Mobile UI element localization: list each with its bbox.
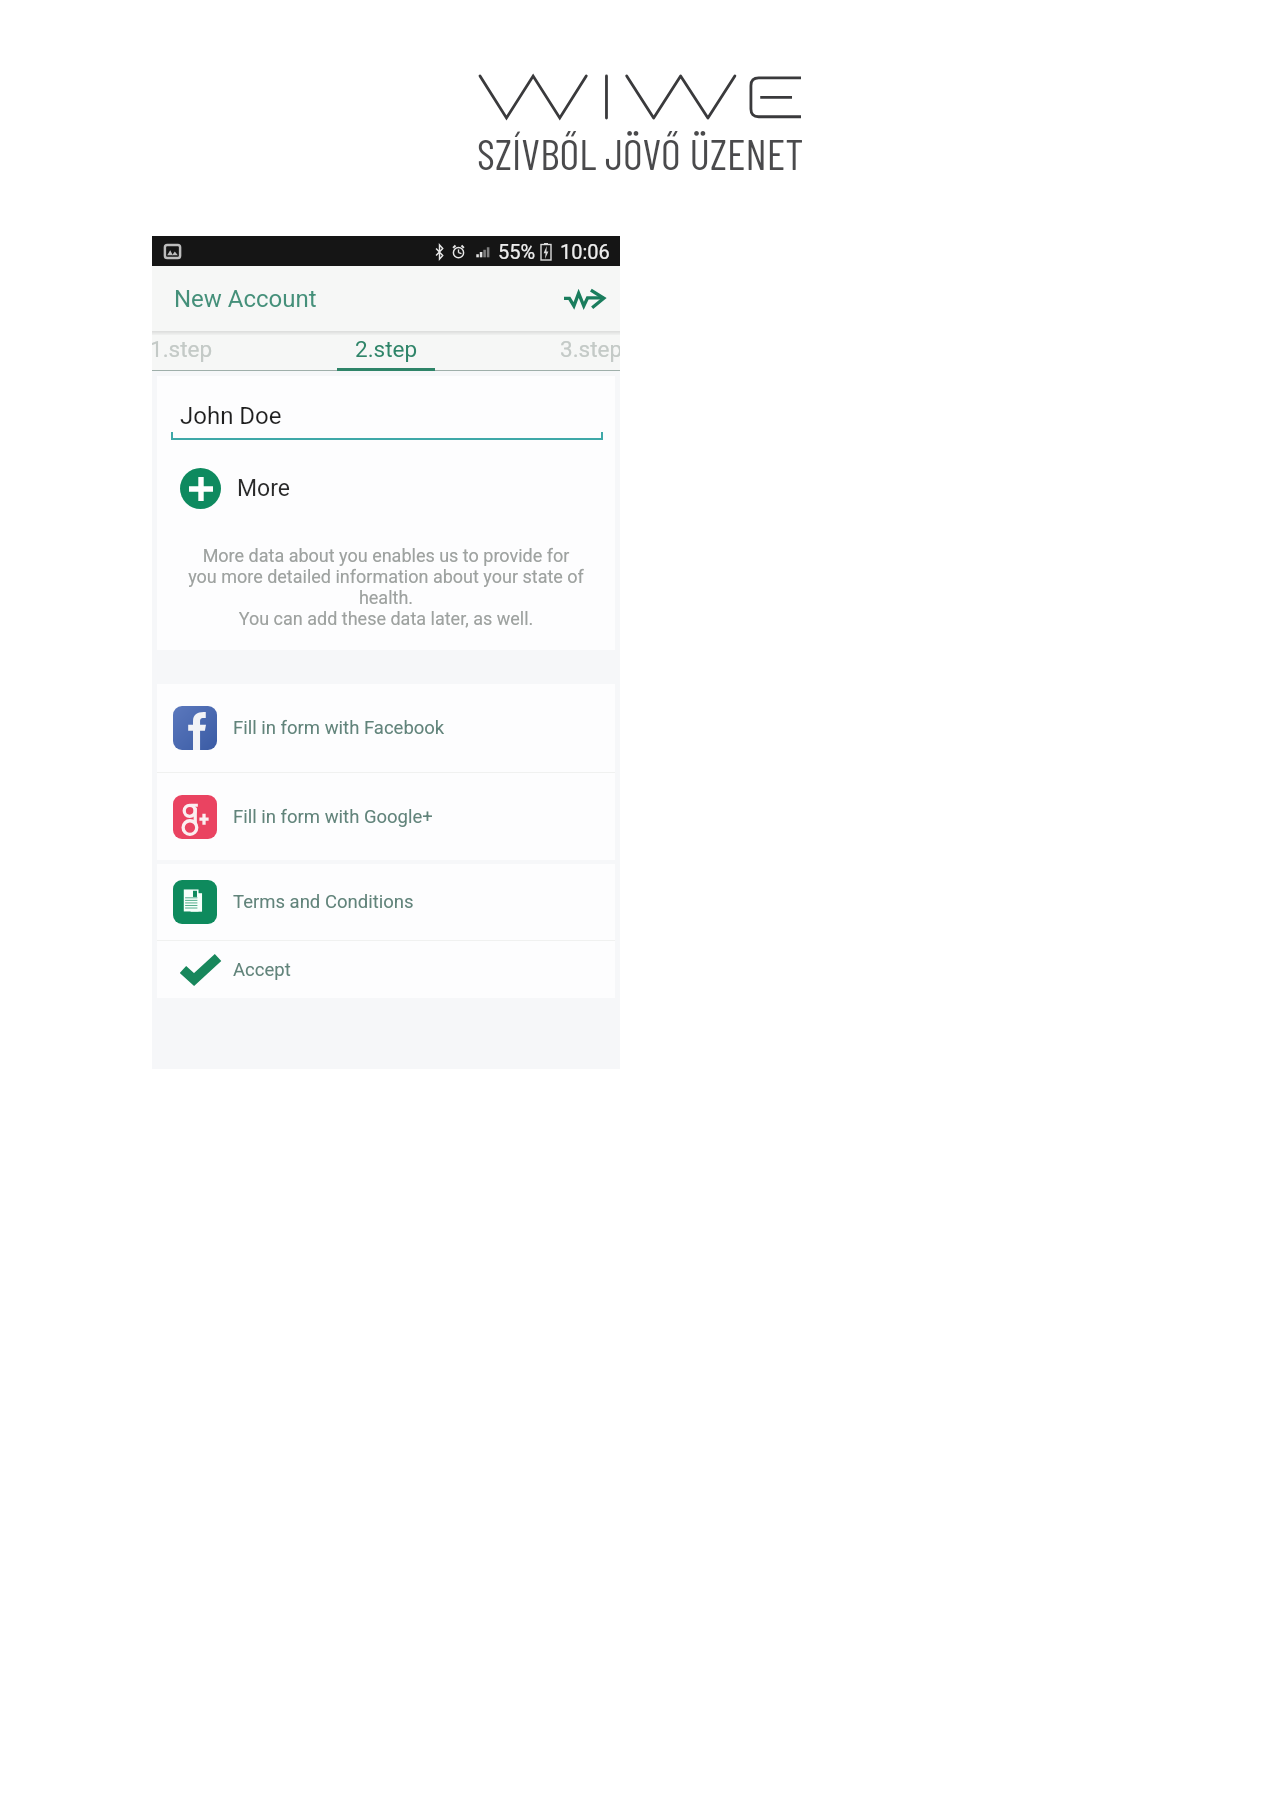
staticText: 3.step — [560, 336, 620, 362]
staticText: More data about you enables us to provid… — [185, 545, 587, 629]
button[interactable]: Terms and Conditions — [157, 864, 615, 940]
staticText: SZÍVBŐL JÖVŐ ÜZENET — [477, 127, 804, 179]
staticText: 1.step — [152, 336, 213, 362]
staticText: 10:06 — [560, 240, 610, 263]
staticText: 2.step — [355, 336, 418, 362]
button[interactable]: John Doe — [171, 394, 617, 441]
button[interactable]: Fill in form with Facebook — [157, 684, 615, 772]
button[interactable]: 2.step — [284, 335, 489, 368]
button[interactable]: Accept — [157, 941, 615, 998]
button[interactable]: More — [180, 468, 615, 509]
button[interactable]: Next step — [566, 277, 610, 321]
button[interactable]: Fill in form with Google+ — [157, 773, 615, 860]
staticText: New Account — [174, 285, 317, 313]
staticText: Fill in form with Facebook — [233, 717, 445, 739]
staticText: Terms and Conditions — [233, 891, 414, 913]
staticText: Accept — [233, 959, 291, 981]
button[interactable]: 3.step — [489, 335, 620, 368]
button[interactable]: 1.step — [152, 335, 284, 368]
staticText: John Doe — [180, 402, 282, 430]
staticText: 55% — [498, 240, 536, 263]
staticText: Fill in form with Google+ — [233, 806, 433, 828]
staticText: More — [237, 475, 290, 502]
